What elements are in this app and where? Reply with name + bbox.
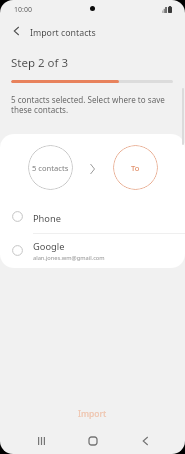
staticText: alan.jones.wm@gmail.com [33,254,105,262]
staticText: Import [78,408,107,420]
staticText: 5 contacts [32,163,69,173]
button[interactable]: Recents [21,427,61,454]
staticText: Google [33,240,65,253]
button[interactable]: Google [0,234,185,267]
staticText: 10:00 [14,5,32,15]
staticText: To [131,163,140,173]
button[interactable]: Navigate up [3,18,29,44]
button[interactable]: To [113,145,158,190]
staticText: Step 2 of 3 [11,55,69,71]
button[interactable]: Import [0,403,185,425]
button[interactable]: 5 contacts [28,145,73,190]
button[interactable]: Home [73,427,113,454]
button[interactable]: Phone [0,202,185,232]
staticText: Phone [33,212,61,225]
staticText: 5 contacts selected. Select where to sav… [11,94,165,115]
staticText: Import contacts [30,27,96,39]
button[interactable]: Back [125,427,165,454]
